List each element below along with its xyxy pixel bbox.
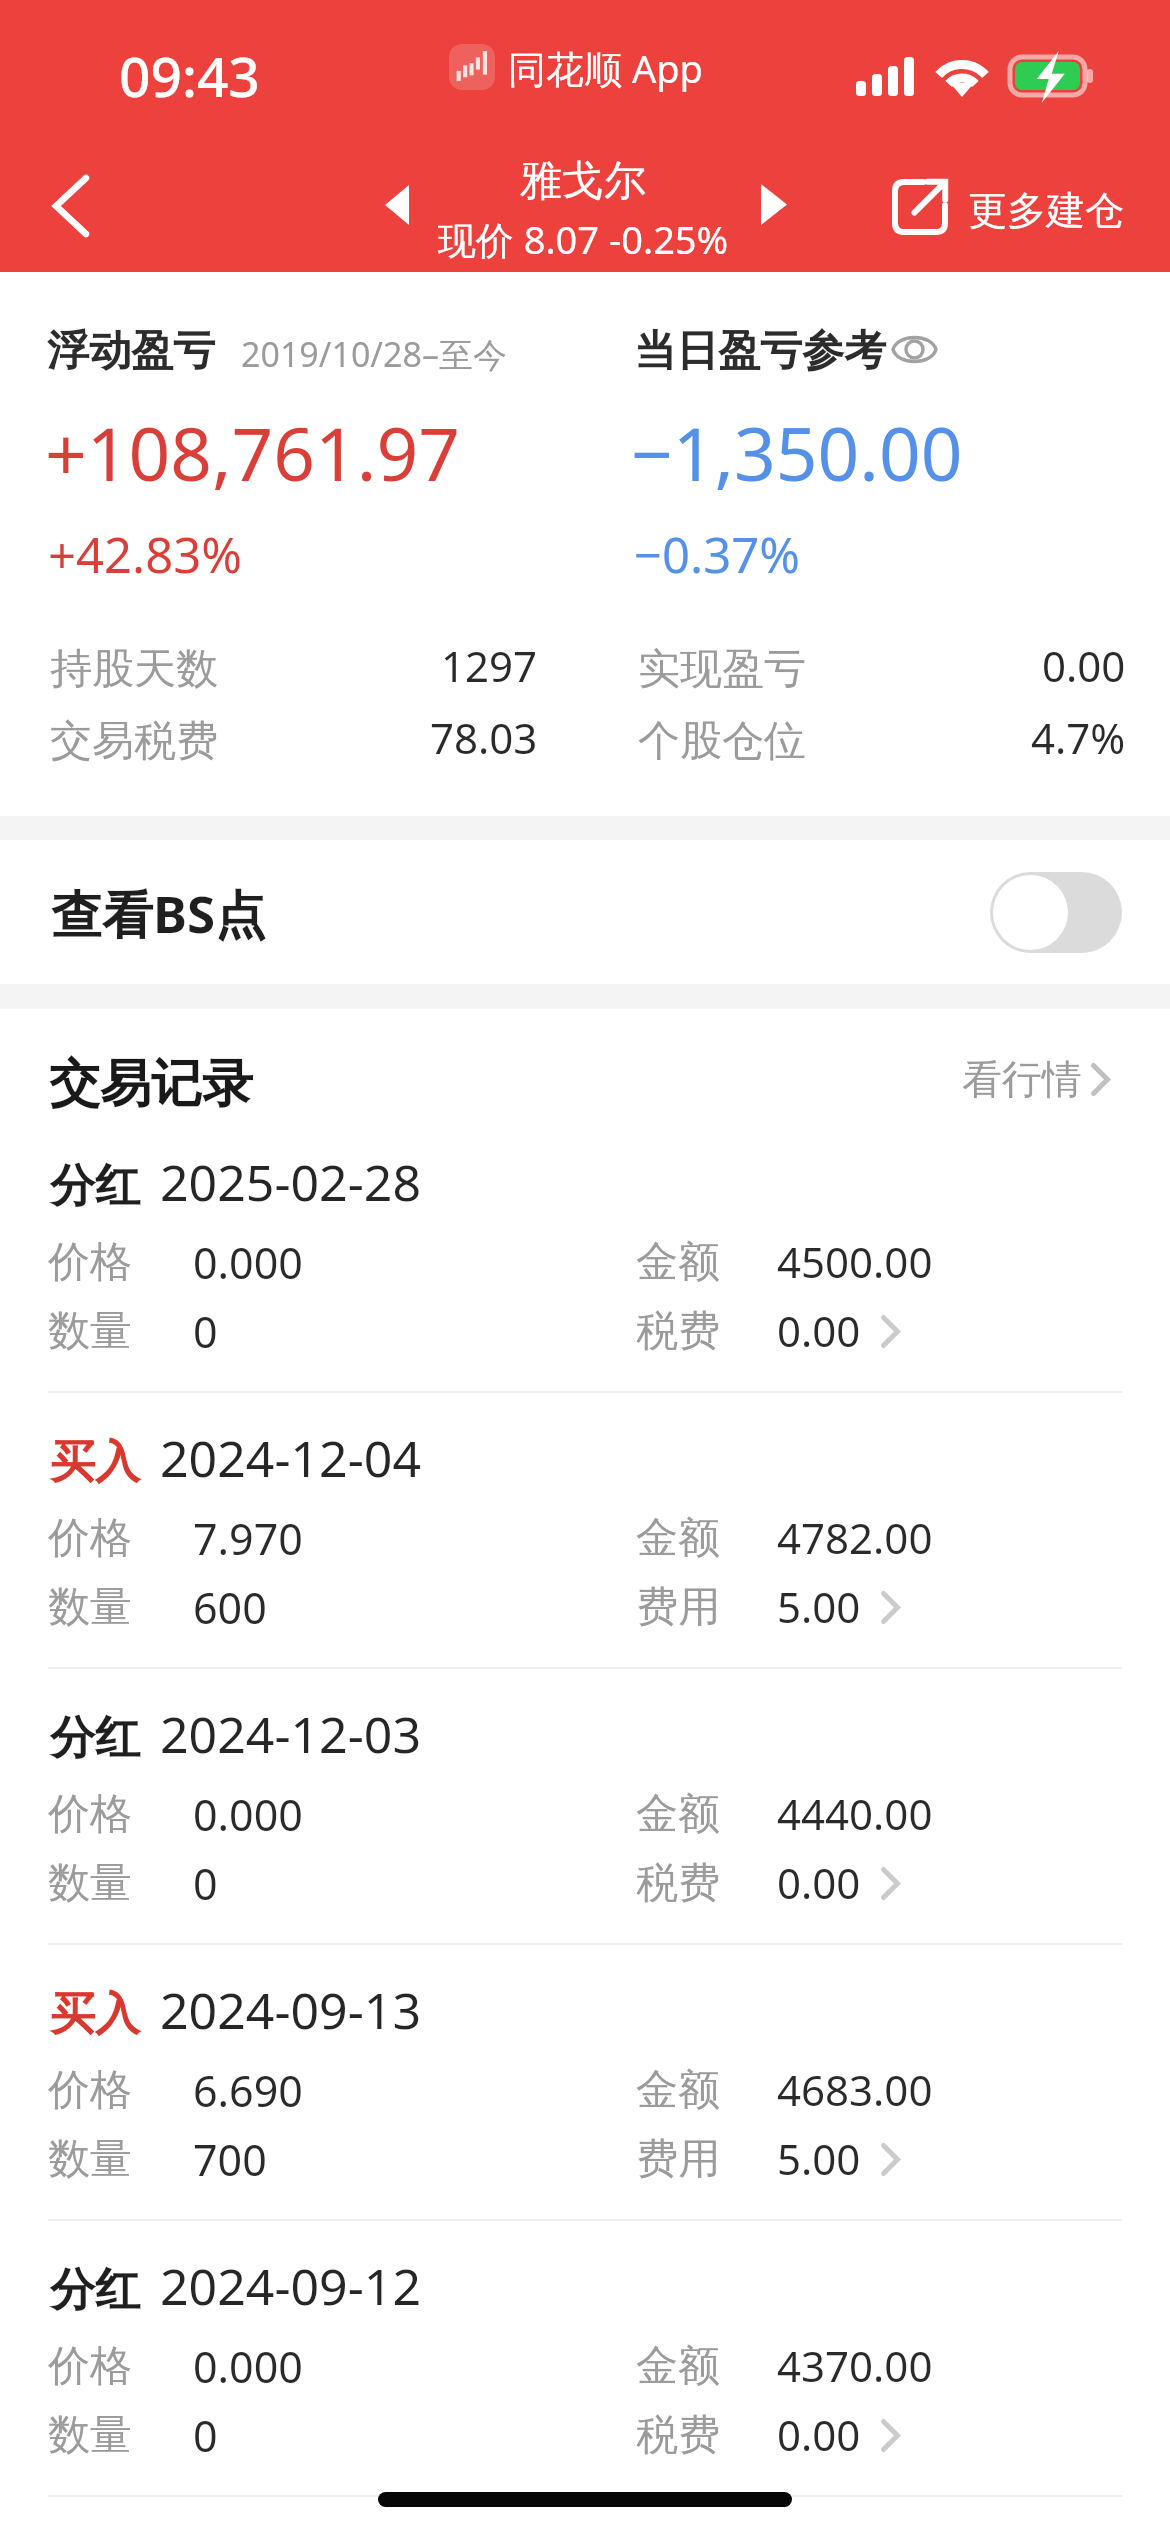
staticText: 分红 bbox=[50, 1710, 140, 1767]
staticText: 09:43 bbox=[119, 38, 260, 113]
staticText: 数量 bbox=[48, 1857, 132, 1910]
staticText: 浮动盈亏 bbox=[47, 325, 215, 378]
button[interactable]: 买入 bbox=[0, 1943, 1170, 2219]
staticText: 数量 bbox=[48, 2409, 132, 2462]
staticText: 2024-09-12 bbox=[160, 2252, 421, 2320]
staticText: 0.000 bbox=[193, 1233, 303, 1292]
staticText: 2019/10/28–至今 bbox=[241, 331, 507, 377]
staticText: 金额 bbox=[636, 2064, 720, 2117]
staticText: 金额 bbox=[636, 1512, 720, 1565]
staticText: 分红 bbox=[50, 2262, 140, 2319]
staticText: +108,761.97 bbox=[45, 403, 460, 502]
staticText: 税费 bbox=[636, 1857, 720, 1910]
staticText: 600 bbox=[193, 1578, 267, 1637]
staticText: 数量 bbox=[48, 1581, 132, 1634]
staticText: 6.690 bbox=[193, 2061, 303, 2120]
staticText: 税费 bbox=[636, 1305, 720, 1358]
staticText: 价格 bbox=[48, 2064, 132, 2117]
staticText: 雅戈尔 bbox=[283, 155, 883, 208]
staticText: 金额 bbox=[636, 1236, 720, 1289]
staticText: 费用 bbox=[636, 1581, 720, 1634]
staticText: 4782.00 bbox=[777, 1509, 933, 1566]
staticText: 价格 bbox=[48, 2340, 132, 2393]
staticText: 78.03 bbox=[430, 709, 538, 766]
staticText: 价格 bbox=[48, 1236, 132, 1289]
staticText: 4683.00 bbox=[777, 2061, 933, 2118]
staticText: 0.000 bbox=[193, 2337, 303, 2396]
staticText: 税费 bbox=[636, 2409, 720, 2462]
staticText: 1297 bbox=[441, 637, 538, 694]
staticText: 5.00 bbox=[777, 2130, 861, 2187]
staticText: 价格 bbox=[48, 1788, 132, 1841]
staticText: 同花顺 App bbox=[508, 42, 703, 94]
button[interactable]: Previous stock bbox=[356, 165, 436, 245]
button[interactable]: 看行情 bbox=[962, 1026, 1110, 1132]
staticText: 4500.00 bbox=[777, 1233, 933, 1290]
staticText: 金额 bbox=[636, 1788, 720, 1841]
staticText: 金额 bbox=[636, 2340, 720, 2393]
staticText: 4440.00 bbox=[777, 1785, 933, 1842]
staticText: 2024-09-13 bbox=[160, 1976, 421, 2044]
staticText: 当日盈亏参考 bbox=[634, 325, 886, 378]
staticText: 看行情 bbox=[962, 1054, 1082, 1104]
staticText: 买入 bbox=[50, 1434, 140, 1491]
staticText: 0 bbox=[193, 1302, 218, 1361]
staticText: 700 bbox=[193, 2130, 267, 2189]
staticText: 查看BS点 bbox=[51, 878, 267, 948]
staticText: 0.000 bbox=[193, 1785, 303, 1844]
staticText: 4370.00 bbox=[777, 2337, 933, 2394]
button[interactable]: Next stock bbox=[734, 164, 814, 244]
staticText: 分红 bbox=[50, 1158, 140, 1215]
button[interactable]: Back bbox=[21, 156, 121, 256]
staticText: 2024-12-04 bbox=[160, 1424, 421, 1492]
button[interactable]: 买入 bbox=[0, 1391, 1170, 1667]
staticText: 更多建仓 bbox=[968, 186, 1124, 235]
staticText: 现价 8.07 -0.25% bbox=[283, 213, 883, 265]
staticText: 2024-12-03 bbox=[160, 1700, 421, 1768]
staticText: 0.00 bbox=[777, 2406, 861, 2463]
button[interactable]: 分红 bbox=[0, 2219, 1170, 2495]
staticText: −0.37% bbox=[634, 521, 800, 588]
button[interactable]: Toggle BS points bbox=[990, 872, 1122, 953]
staticText: +42.83% bbox=[48, 521, 242, 588]
button[interactable]: 更多建仓 bbox=[880, 162, 1145, 252]
staticText: 0.00 bbox=[1042, 637, 1126, 694]
staticText: 0 bbox=[193, 1854, 218, 1913]
staticText: 交易记录 bbox=[49, 1052, 253, 1116]
staticText: 交易税费 bbox=[50, 715, 218, 768]
staticText: 价格 bbox=[48, 1512, 132, 1565]
staticText: 数量 bbox=[48, 1305, 132, 1358]
staticText: 个股仓位 bbox=[638, 715, 806, 768]
staticText: 0.00 bbox=[777, 1302, 861, 1359]
staticText: 0 bbox=[193, 2406, 218, 2465]
staticText: −1,350.00 bbox=[631, 403, 963, 502]
staticText: 买入 bbox=[50, 1986, 140, 2043]
staticText: 费用 bbox=[636, 2133, 720, 2186]
button[interactable]: 分红 bbox=[0, 1667, 1170, 1943]
staticText: 持股天数 bbox=[50, 643, 218, 696]
button[interactable]: 查看BS点 bbox=[0, 840, 1170, 984]
staticText: 7.970 bbox=[193, 1509, 303, 1568]
button[interactable]: 分红 bbox=[0, 1115, 1170, 1391]
staticText: 0.00 bbox=[777, 1854, 861, 1911]
staticText: 实现盈亏 bbox=[638, 643, 806, 696]
staticText: 4.7% bbox=[1031, 709, 1126, 766]
staticText: 5.00 bbox=[777, 1578, 861, 1635]
staticText: 数量 bbox=[48, 2133, 132, 2186]
staticText: 2025-02-28 bbox=[160, 1148, 421, 1216]
